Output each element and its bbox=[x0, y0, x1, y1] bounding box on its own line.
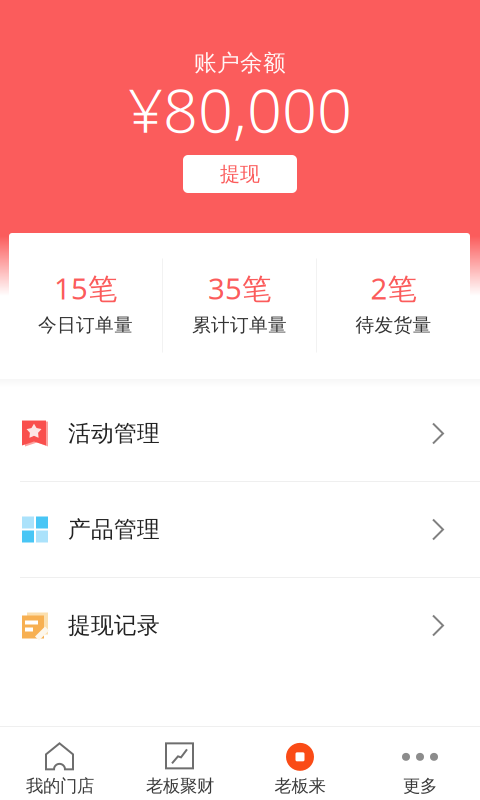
staticText: 提现 bbox=[220, 162, 260, 186]
button[interactable]: 我的门店 bbox=[0, 727, 120, 800]
staticText: 待发货量 bbox=[355, 313, 431, 336]
button[interactable]: 活动管理 bbox=[0, 386, 480, 481]
button[interactable]: 提现 bbox=[183, 155, 297, 193]
staticText: 账户余额 bbox=[194, 49, 286, 77]
staticText: 我的门店 bbox=[26, 775, 94, 797]
staticText: 老板来 bbox=[274, 775, 325, 797]
staticText: 产品管理 bbox=[68, 516, 160, 543]
button[interactable]: 提现记录 bbox=[0, 578, 480, 673]
staticText: 累计订单量 bbox=[192, 313, 287, 336]
staticText: 今日订单量 bbox=[38, 313, 133, 336]
staticText: 活动管理 bbox=[68, 420, 160, 447]
button[interactable]: 老板聚财 bbox=[120, 727, 240, 800]
staticText: 更多 bbox=[403, 775, 437, 797]
staticText: 15笔 bbox=[54, 268, 117, 307]
staticText: 2笔 bbox=[370, 268, 416, 307]
button[interactable]: 老板来 bbox=[240, 727, 360, 800]
staticText: 老板聚财 bbox=[146, 775, 214, 797]
button[interactable]: 产品管理 bbox=[0, 482, 480, 577]
staticText: 提现记录 bbox=[68, 612, 160, 639]
staticText: 35笔 bbox=[208, 268, 271, 307]
button[interactable]: 更多 bbox=[360, 727, 480, 800]
staticText: ¥80,000 bbox=[128, 68, 352, 150]
